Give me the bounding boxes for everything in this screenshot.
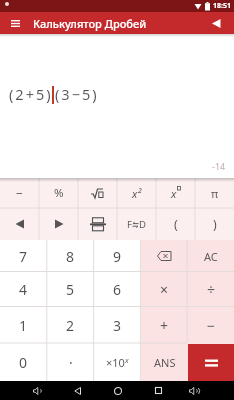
staticText: 6	[113, 280, 122, 299]
button[interactable]: %	[39, 178, 78, 208]
staticText: −	[16, 185, 23, 201]
staticText: x²	[132, 186, 142, 201]
button[interactable]	[0, 208, 39, 240]
staticText: %	[54, 185, 64, 201]
staticText: 2	[66, 316, 75, 335]
staticText: ÷	[207, 280, 216, 299]
staticText: (	[174, 216, 178, 233]
button[interactable]	[7, 15, 23, 31]
button[interactable]: 2	[47, 307, 94, 344]
staticText: 18:51	[213, 1, 231, 11]
staticText: AC	[204, 249, 218, 264]
staticText: 0	[19, 353, 28, 372]
button[interactable]: ANS	[141, 344, 188, 381]
staticText: 8	[66, 247, 75, 266]
staticText: (2+5)	[9, 84, 53, 104]
staticText: D	[139, 218, 146, 231]
staticText: π	[211, 186, 219, 201]
staticText: x	[171, 186, 177, 201]
button[interactable]	[152, 384, 165, 397]
button[interactable]	[188, 384, 201, 397]
button[interactable]: 0	[0, 344, 47, 381]
button[interactable]	[111, 384, 124, 397]
staticText: F	[127, 218, 132, 231]
staticText: −	[207, 316, 216, 335]
staticText: +	[160, 316, 169, 335]
button[interactable]	[188, 344, 234, 381]
staticText: 1	[19, 316, 28, 335]
button[interactable]: x²	[117, 178, 156, 208]
button[interactable]: 5	[47, 272, 94, 307]
staticText: (3−5)	[55, 84, 99, 104]
button[interactable]	[31, 384, 44, 397]
button[interactable]: +	[141, 307, 188, 344]
button[interactable]	[209, 16, 223, 30]
staticText: -14	[212, 160, 226, 172]
staticText: Калькулятор Дробей	[33, 16, 147, 31]
button[interactable]: 9	[94, 240, 141, 272]
button[interactable]: x	[156, 178, 195, 208]
button[interactable]: )	[195, 208, 234, 240]
staticText: ANS	[154, 355, 176, 370]
button[interactable]: F	[117, 208, 156, 240]
button[interactable]: 3	[94, 307, 141, 344]
button[interactable]	[141, 240, 188, 272]
button[interactable]	[78, 178, 117, 208]
staticText: ×10	[106, 355, 125, 370]
button[interactable]: π	[195, 178, 234, 208]
button[interactable]: (	[156, 208, 195, 240]
staticText: 9	[113, 247, 122, 266]
staticText: 5	[66, 280, 75, 299]
staticText: 3	[113, 316, 122, 335]
staticText: 4	[19, 280, 28, 299]
staticText: x	[125, 355, 129, 365]
staticText: 7	[19, 247, 28, 266]
button[interactable]: 8	[47, 240, 94, 272]
button[interactable]: AC	[188, 240, 234, 272]
button[interactable]: ×10	[94, 344, 141, 381]
button[interactable]: ×	[141, 272, 188, 307]
staticText: )	[213, 216, 217, 233]
button[interactable]: ÷	[188, 272, 234, 307]
button[interactable]: 4	[0, 272, 47, 307]
button[interactable]: 7	[0, 240, 47, 272]
button[interactable]: ·	[47, 344, 94, 381]
button[interactable]	[71, 384, 84, 397]
button[interactable]: −	[188, 307, 234, 344]
button[interactable]: 6	[94, 272, 141, 307]
button[interactable]: −	[0, 178, 39, 208]
button[interactable]: 1	[0, 307, 47, 344]
button[interactable]	[78, 208, 117, 240]
staticText: ·	[69, 353, 73, 372]
staticText: ×	[160, 280, 169, 299]
button[interactable]	[39, 208, 78, 240]
